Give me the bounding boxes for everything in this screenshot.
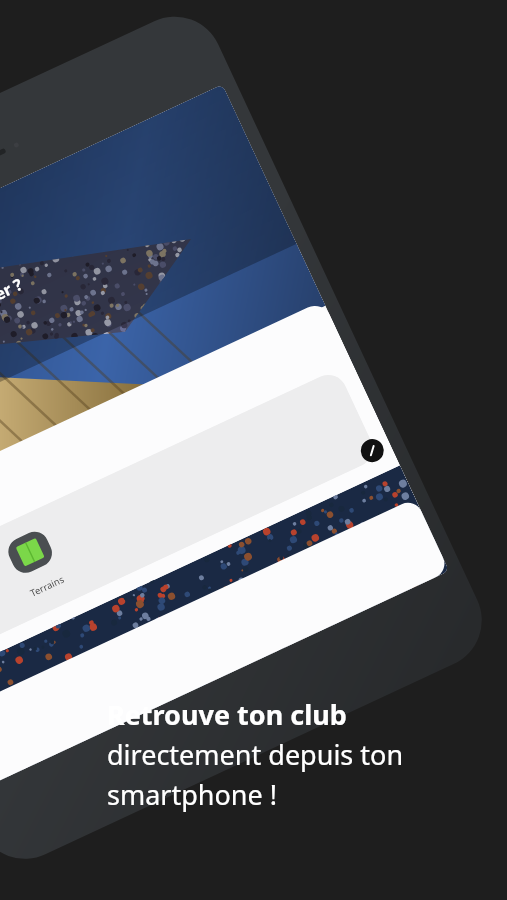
button[interactable]: Retrouve ton club directement depuis ton…	[0, 0, 507, 900]
